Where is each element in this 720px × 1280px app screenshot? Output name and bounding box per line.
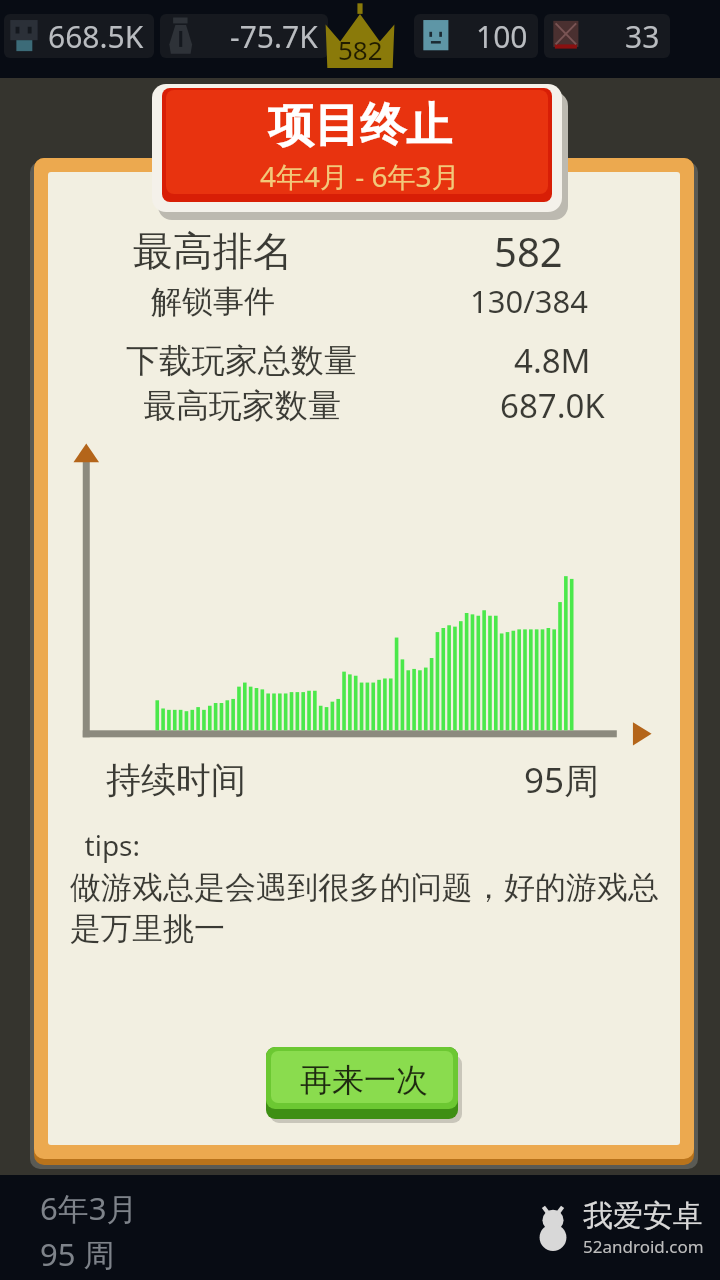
- staticText: 再来一次: [300, 1060, 428, 1100]
- staticText: 95周: [524, 756, 600, 804]
- staticText: 668.5K: [48, 16, 144, 57]
- button[interactable]: [334, 14, 410, 58]
- staticText: 4.8M: [514, 338, 591, 383]
- staticText: -75.7K: [230, 16, 318, 57]
- staticText: 687.0K: [500, 383, 605, 428]
- button[interactable]: 再来一次: [266, 1047, 462, 1123]
- staticText: 做游戏总是会遇到很多的问题，好的游戏总是万里挑一: [70, 868, 664, 949]
- button[interactable]: -75.7K: [160, 14, 328, 58]
- staticText: 项目终止: [268, 97, 452, 155]
- staticText: 582: [494, 224, 563, 278]
- staticText: 解锁事件: [151, 282, 275, 321]
- staticText: 582: [338, 32, 383, 67]
- staticText: 95 周: [40, 1233, 115, 1275]
- staticText: 6年3月: [40, 1187, 138, 1229]
- staticText: 4年4月 - 6年3月: [260, 157, 460, 195]
- staticText: 33: [625, 16, 660, 57]
- staticText: 130/384: [470, 280, 588, 322]
- button[interactable]: 100: [414, 14, 538, 58]
- staticText: 52android.com: [583, 1235, 704, 1258]
- staticText: 我爱安卓: [583, 1197, 703, 1235]
- staticText: tips:: [70, 826, 141, 864]
- staticText: 持续时间: [106, 758, 246, 802]
- staticText: 最高玩家数量: [143, 385, 341, 427]
- staticText: 下载玩家总数量: [126, 340, 357, 382]
- button[interactable]: 33: [544, 14, 670, 58]
- staticText: 最高排名: [133, 226, 293, 276]
- button[interactable]: 668.5K: [4, 14, 154, 58]
- staticText: 100: [476, 16, 528, 57]
